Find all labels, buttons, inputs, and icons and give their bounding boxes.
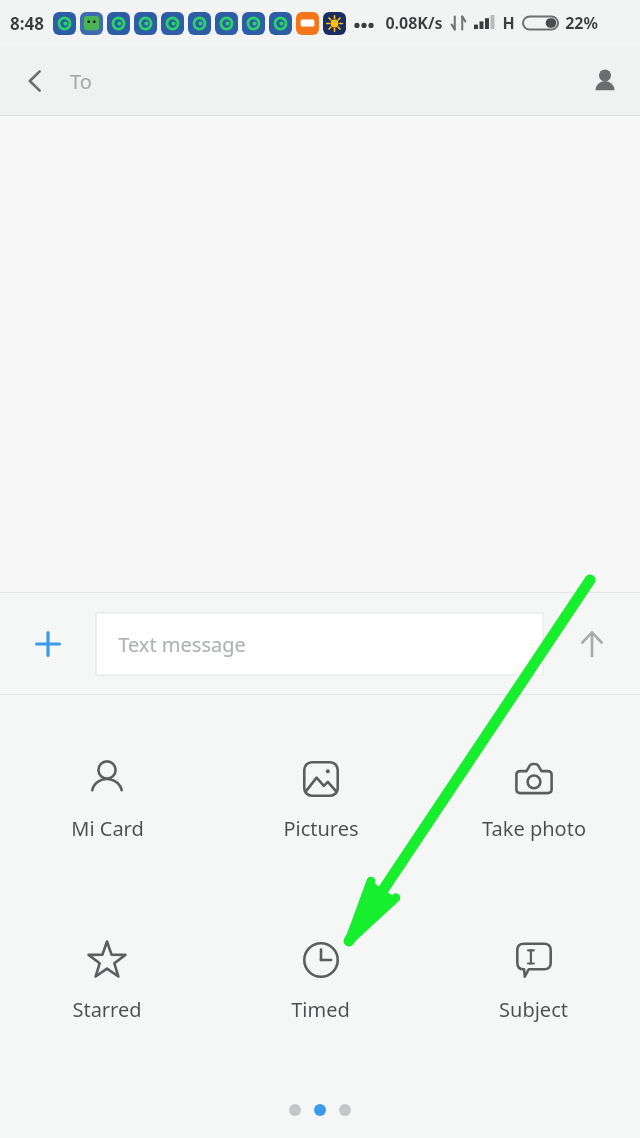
button[interactable]: Send bbox=[543, 593, 640, 694]
button[interactable]: Back bbox=[0, 46, 70, 116]
button[interactable]: Add attachment bbox=[0, 593, 96, 694]
button[interactable]: Pictures bbox=[214, 753, 427, 846]
button[interactable]: Take photo bbox=[427, 753, 640, 846]
button[interactable]: Starred bbox=[0, 934, 214, 1027]
staticText: Mi Card bbox=[71, 815, 144, 842]
button[interactable]: Text message bbox=[96, 613, 543, 675]
staticText: Text message bbox=[118, 631, 246, 658]
staticText: Timed bbox=[291, 996, 350, 1023]
staticText: 22% bbox=[565, 12, 598, 34]
button[interactable]: Contacts bbox=[570, 46, 640, 116]
staticText: Take photo bbox=[482, 815, 586, 842]
staticText: 0.08K/s bbox=[385, 12, 443, 34]
staticText: Starred bbox=[72, 996, 142, 1023]
staticText: 8:48 bbox=[10, 12, 44, 35]
staticText: Subject bbox=[499, 996, 568, 1023]
staticText: Pictures bbox=[283, 815, 359, 842]
button[interactable]: Timed bbox=[214, 934, 427, 1027]
staticText: H bbox=[502, 12, 515, 34]
staticText: To bbox=[70, 68, 92, 95]
button[interactable]: Mi Card bbox=[0, 753, 214, 846]
button[interactable]: Subject bbox=[427, 934, 640, 1027]
